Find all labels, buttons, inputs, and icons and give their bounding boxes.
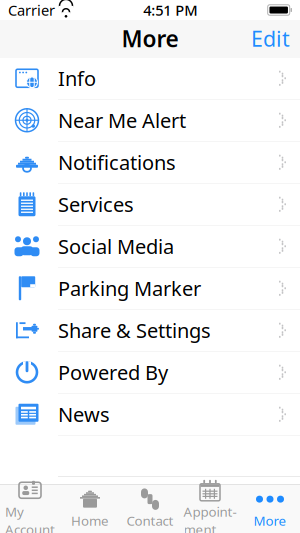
staticText: Parking Marker [58, 275, 201, 302]
button[interactable]: Powered By [0, 351, 300, 393]
button[interactable]: Appointment [180, 485, 240, 533]
staticText: Powered By [58, 359, 168, 386]
button[interactable]: Share & Settings [0, 309, 300, 351]
staticText: Contact [126, 512, 173, 529]
button[interactable]: Parking Marker [0, 267, 300, 309]
staticText: Notifications [58, 149, 176, 176]
staticText: Home [71, 512, 109, 529]
staticText: More [253, 512, 286, 529]
staticText: My Account [5, 503, 55, 533]
staticText: News [58, 401, 110, 428]
staticText: Carrier [8, 0, 55, 20]
staticText: Share & Settings [58, 317, 211, 344]
button[interactable]: Services [0, 183, 300, 225]
button[interactable]: Edit [241, 18, 300, 59]
button[interactable]: Near Me Alert [0, 99, 300, 141]
staticText: Services [58, 191, 134, 218]
staticText: Edit [251, 24, 290, 53]
staticText: Info [58, 65, 96, 92]
button[interactable]: Home [60, 485, 120, 533]
button[interactable]: News [0, 393, 300, 435]
button[interactable]: Notifications [0, 141, 300, 183]
button[interactable]: More [240, 485, 300, 533]
staticText: Near Me Alert [58, 107, 186, 134]
staticText: Social Media [58, 233, 174, 260]
staticText: More [121, 23, 178, 53]
button[interactable]: Contact [120, 485, 180, 533]
button[interactable]: Social Media [0, 225, 300, 267]
button[interactable]: Info [0, 57, 300, 99]
button[interactable]: My Account [0, 485, 60, 533]
staticText: 4:51 PM [143, 0, 197, 20]
staticText: Appointment [183, 503, 236, 533]
